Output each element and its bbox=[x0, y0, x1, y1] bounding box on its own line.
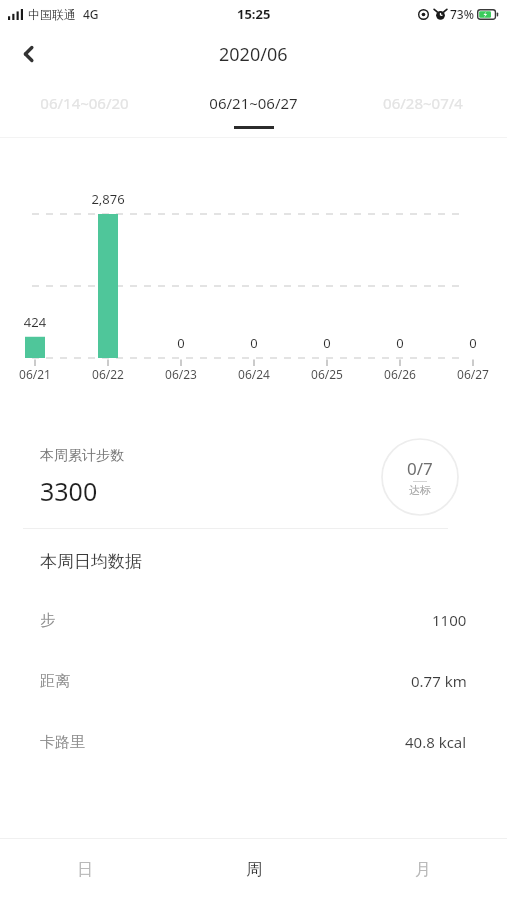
staticText: 15:25 bbox=[237, 5, 271, 23]
staticText: 0 bbox=[365, 334, 435, 352]
staticText: 40.8 kcal bbox=[405, 732, 467, 752]
staticText: 0 bbox=[219, 334, 289, 352]
button[interactable]: 周 bbox=[169, 839, 338, 900]
staticText: 06/26 bbox=[365, 366, 435, 382]
staticText: 月 bbox=[415, 860, 431, 880]
staticText: 周 bbox=[246, 860, 262, 880]
staticText: 中国联通 bbox=[28, 7, 76, 22]
staticText: 424 bbox=[0, 313, 70, 331]
staticText: 06/28~07/4 bbox=[383, 93, 463, 113]
staticText: 06/14~06/20 bbox=[40, 93, 129, 113]
staticText: 0 bbox=[292, 334, 362, 352]
staticText: 06/23 bbox=[146, 366, 216, 382]
staticText: 06/27 bbox=[438, 366, 507, 382]
button[interactable]: 日 bbox=[0, 839, 169, 900]
staticText: 2020/06 bbox=[219, 42, 288, 67]
staticText: 本周日均数据 bbox=[40, 551, 142, 572]
button[interactable]: 06/28~07/4 bbox=[338, 80, 507, 138]
button[interactable]: 月 bbox=[338, 839, 507, 900]
button[interactable]: 06/14~06/20 bbox=[0, 80, 169, 138]
button[interactable]: 距离 bbox=[40, 671, 467, 691]
staticText: 0/7 bbox=[407, 457, 433, 480]
staticText: 0.77 km bbox=[411, 671, 467, 691]
staticText: 日 bbox=[77, 860, 93, 880]
staticText: 0 bbox=[146, 334, 216, 352]
staticText: 4G bbox=[83, 6, 99, 22]
staticText: 步 bbox=[40, 611, 55, 630]
staticText: 本周累计步数 bbox=[40, 447, 124, 465]
staticText: 06/24 bbox=[219, 366, 289, 382]
staticText: 06/21~06/27 bbox=[209, 93, 298, 113]
staticText: 3300 bbox=[40, 474, 98, 508]
staticText: 06/25 bbox=[292, 366, 362, 382]
staticText: 1100 bbox=[432, 610, 467, 630]
staticText: 距离 bbox=[40, 672, 70, 691]
staticText: 73% bbox=[450, 6, 474, 22]
button[interactable]: 06/21~06/27 bbox=[169, 80, 338, 138]
staticText: 2,876 bbox=[73, 190, 143, 208]
staticText: 卡路里 bbox=[40, 733, 85, 752]
button[interactable]: 0/7 bbox=[381, 438, 459, 516]
staticText: 06/22 bbox=[73, 366, 143, 382]
staticText: 达标 bbox=[409, 483, 431, 497]
staticText: 0 bbox=[438, 334, 507, 352]
button[interactable]: 步 bbox=[40, 610, 467, 630]
button[interactable]: Back bbox=[7, 32, 51, 76]
staticText: 06/21 bbox=[0, 366, 70, 382]
button[interactable]: 卡路里 bbox=[40, 732, 467, 752]
